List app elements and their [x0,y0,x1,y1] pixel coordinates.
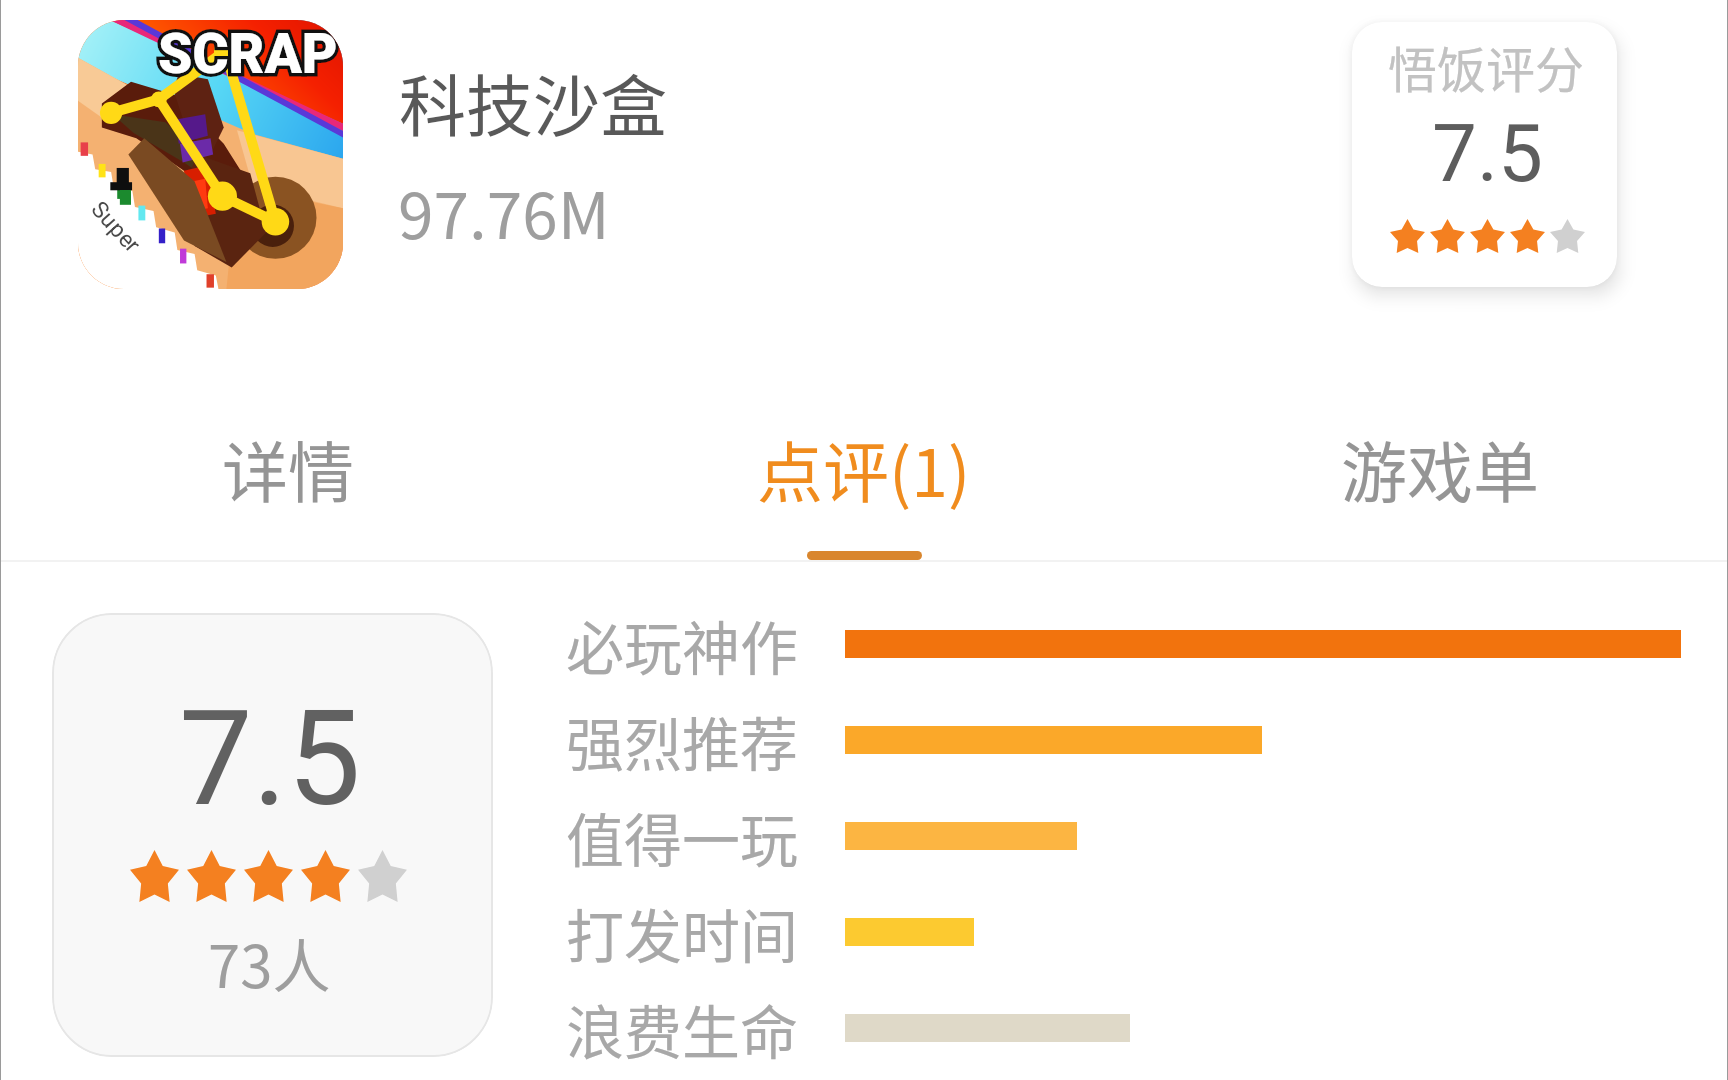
staticText: 浪费生命 [566,987,799,1071]
button[interactable]: 悟饭评分 7.5 [1352,22,1617,287]
staticText: 值得一玩 [566,795,799,879]
staticText: SCRAP [158,22,338,86]
staticText: 7.5 [1432,107,1544,201]
button[interactable]: 评分 7.5，73人 [52,613,493,1057]
staticText: SCRAP [158,22,338,86]
staticText: 打发时间 [566,891,799,975]
staticText: 必玩神作 [566,603,799,687]
staticText: 7.5 [179,682,361,836]
staticText: 97.76M [398,165,610,258]
button[interactable]: App icon [78,20,343,289]
staticText: 详情 [222,420,354,516]
staticText: 悟饭评分 [1388,31,1585,102]
button[interactable]: 点评(1) [576,400,1152,560]
staticText: 73人 [208,921,331,1005]
staticText: 游戏单 [1341,420,1539,516]
button[interactable]: 游戏单 [1152,400,1728,560]
button[interactable]: 详情 [0,400,576,560]
staticText: 点评(1) [757,420,971,516]
staticText: 强烈推荐 [566,699,799,783]
staticText: 科技沙盒 [399,53,667,150]
